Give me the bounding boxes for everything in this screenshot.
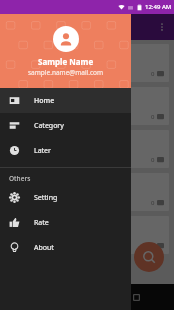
button[interactable]: Effort a — [5, 173, 169, 211]
staticText: 0 — [151, 113, 155, 121]
staticText: consectetur adipiscing, aliquet — [10, 189, 96, 197]
staticText: Snapchat is technology — [10, 91, 91, 101]
button[interactable]: Twin brother Farhad — [5, 44, 169, 82]
button[interactable]: Category — [0, 113, 131, 138]
button[interactable]: Recents — [126, 287, 146, 307]
staticText: Setting — [34, 193, 58, 203]
staticText: 0 — [151, 199, 155, 207]
staticText: 0 — [151, 70, 155, 78]
staticText: Later — [34, 146, 51, 156]
staticText: sample.name@mail.com — [28, 68, 104, 77]
button[interactable]: Others punish — [5, 130, 169, 168]
staticText: Category — [34, 121, 64, 131]
button[interactable]: Search — [134, 242, 164, 272]
staticText: Twin brother Farhad — [10, 48, 82, 58]
button[interactable]: Home — [0, 88, 131, 113]
staticText: consectetur adipiscing, aliquet — [10, 146, 96, 154]
staticText: 0 — [151, 156, 155, 164]
staticText: 0 — [151, 242, 155, 250]
button[interactable]: More options — [150, 15, 174, 39]
button[interactable]: About — [0, 235, 131, 260]
button[interactable]: Rate — [0, 210, 131, 235]
staticText: Sample Name — [38, 56, 94, 67]
staticText: Rate — [34, 218, 49, 228]
staticText: Others — [9, 174, 31, 183]
staticText: Home — [34, 96, 55, 106]
staticText: Return the — [10, 220, 48, 230]
staticText: consectetur adipiscing, aliquet — [10, 103, 96, 111]
staticText: consectetur adipiscing, aliquet — [10, 60, 96, 68]
staticText: Effort a — [10, 177, 36, 187]
button[interactable]: Snapchat is technology — [5, 87, 169, 125]
button[interactable]: Setting — [0, 185, 131, 210]
button[interactable] — [0, 14, 174, 310]
button[interactable]: Return the — [5, 216, 169, 254]
staticText: 12:49 AM — [145, 3, 172, 11]
button[interactable]: Later — [0, 138, 131, 163]
staticText: About — [34, 243, 54, 253]
